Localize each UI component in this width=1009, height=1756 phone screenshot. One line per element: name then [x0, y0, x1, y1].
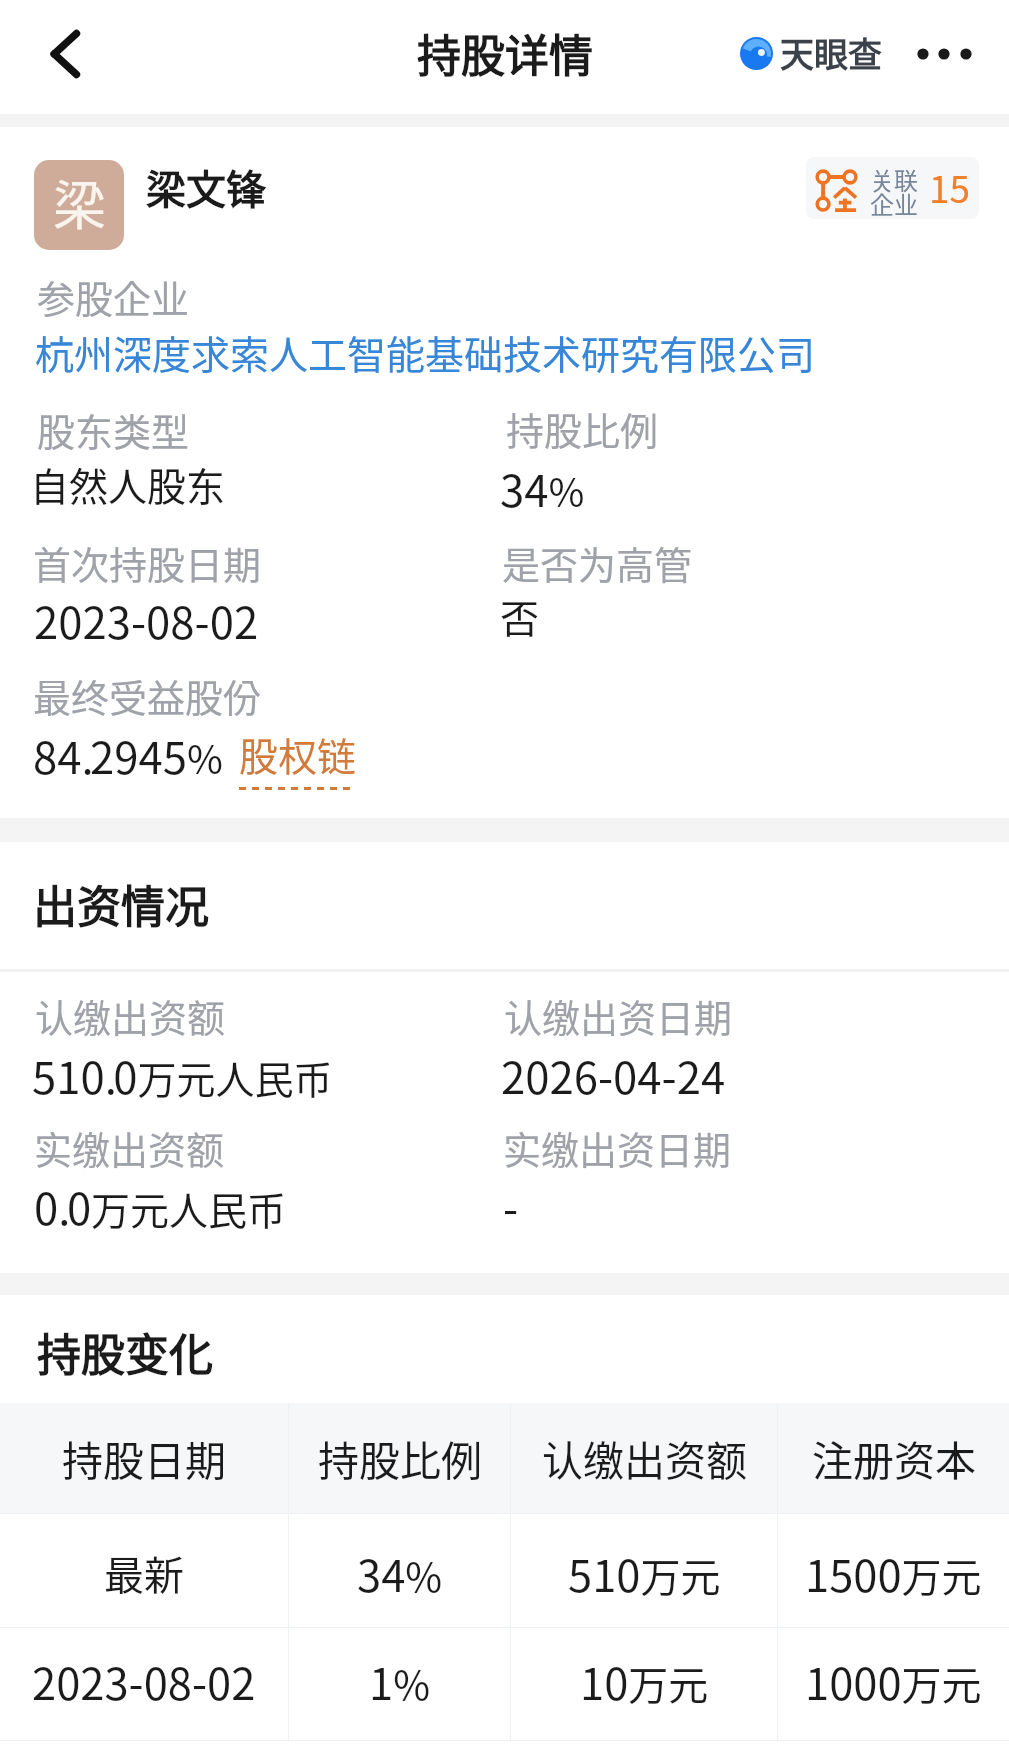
- button[interactable]: 股权链: [239, 726, 357, 790]
- staticText: 510万元: [568, 1542, 721, 1605]
- staticText: 认缴出资日期: [504, 988, 733, 1043]
- staticText: 天眼查: [780, 28, 882, 77]
- staticText: 持股日期: [62, 1428, 226, 1487]
- button[interactable]: More options: [900, 28, 990, 80]
- staticText: 实缴出资日期: [503, 1120, 732, 1175]
- staticText: 企业: [870, 186, 918, 219]
- staticText: 认缴出资额: [542, 1428, 747, 1487]
- staticText: 持股详情: [417, 21, 593, 85]
- staticText: 是否为高管: [502, 535, 693, 590]
- staticText: 出资情况: [33, 872, 209, 936]
- staticText: 2026-04-24: [501, 1043, 726, 1106]
- button[interactable]: 杭州深度求索人工智能基础技术研究有限公司: [35, 324, 816, 380]
- staticText: 认缴出资额: [35, 988, 226, 1043]
- staticText: 否: [500, 588, 540, 644]
- staticText: 1%: [369, 1650, 430, 1713]
- staticText: 2023-08-02: [34, 588, 259, 651]
- staticText: 参股企业: [37, 269, 190, 324]
- staticText: -: [503, 1174, 519, 1237]
- staticText: 首次持股日期: [33, 535, 262, 590]
- button[interactable]: 关联企业 15: [806, 157, 979, 219]
- staticText: 15: [929, 160, 971, 214]
- staticText: 持股比例: [506, 401, 659, 456]
- staticText: 最新: [104, 1544, 184, 1602]
- staticText: 关联: [870, 162, 918, 197]
- staticText: 持股变化: [37, 1320, 213, 1384]
- staticText: 股东类型: [37, 402, 190, 457]
- staticText: 34%: [357, 1542, 443, 1605]
- staticText: 84.2945%: [33, 723, 223, 786]
- staticText: 梁: [53, 164, 106, 241]
- staticText: 10万元: [580, 1650, 709, 1713]
- staticText: 510.0万元人民币: [32, 1043, 333, 1106]
- staticText: 实缴出资额: [34, 1120, 225, 1175]
- staticText: 自然人股东: [30, 456, 226, 512]
- staticText: 2023-08-02: [32, 1650, 256, 1713]
- staticText: 34%: [500, 456, 585, 519]
- staticText: 0.0万元人民币: [34, 1174, 287, 1237]
- staticText: 1500万元: [805, 1542, 982, 1605]
- staticText: 持股比例: [318, 1428, 482, 1487]
- button[interactable]: 天眼查: [732, 24, 894, 86]
- staticText: 股权链: [239, 726, 357, 782]
- staticText: 杭州深度求索人工智能基础技术研究有限公司: [35, 324, 816, 380]
- staticText: 1000万元: [805, 1650, 982, 1713]
- staticText: 注册资本: [812, 1428, 976, 1487]
- staticText: 最终受益股份: [33, 668, 262, 723]
- button[interactable]: Back: [0, 0, 112, 112]
- staticText: 梁文锋: [146, 158, 266, 216]
